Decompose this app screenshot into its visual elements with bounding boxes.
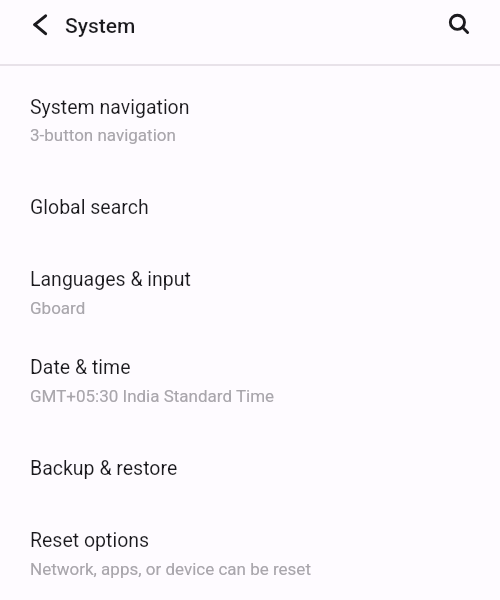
button[interactable]: Search settings [440, 5, 476, 41]
button[interactable]: Reset options [0, 503, 500, 600]
button[interactable]: Date & time [0, 337, 500, 431]
staticText: Date & time [30, 356, 131, 379]
button[interactable]: Languages & input [0, 243, 500, 337]
staticText: 3-button navigation [30, 125, 176, 145]
button[interactable]: Backup & restore [0, 431, 500, 503]
staticText: Languages & input [30, 268, 191, 291]
button[interactable]: Global search [0, 171, 500, 243]
staticText: Backup & restore [30, 457, 178, 480]
staticText: Reset options [30, 529, 150, 552]
staticText: System [65, 14, 136, 39]
button[interactable]: System navigation [0, 66, 500, 171]
button[interactable]: Navigate up [24, 9, 56, 41]
staticText: Gboard [30, 298, 86, 318]
staticText: Global search [30, 196, 149, 219]
staticText: GMT+05:30 India Standard Time [30, 386, 275, 406]
staticText: System navigation [30, 96, 190, 119]
staticText: Network, apps, or device can be reset [30, 559, 311, 579]
